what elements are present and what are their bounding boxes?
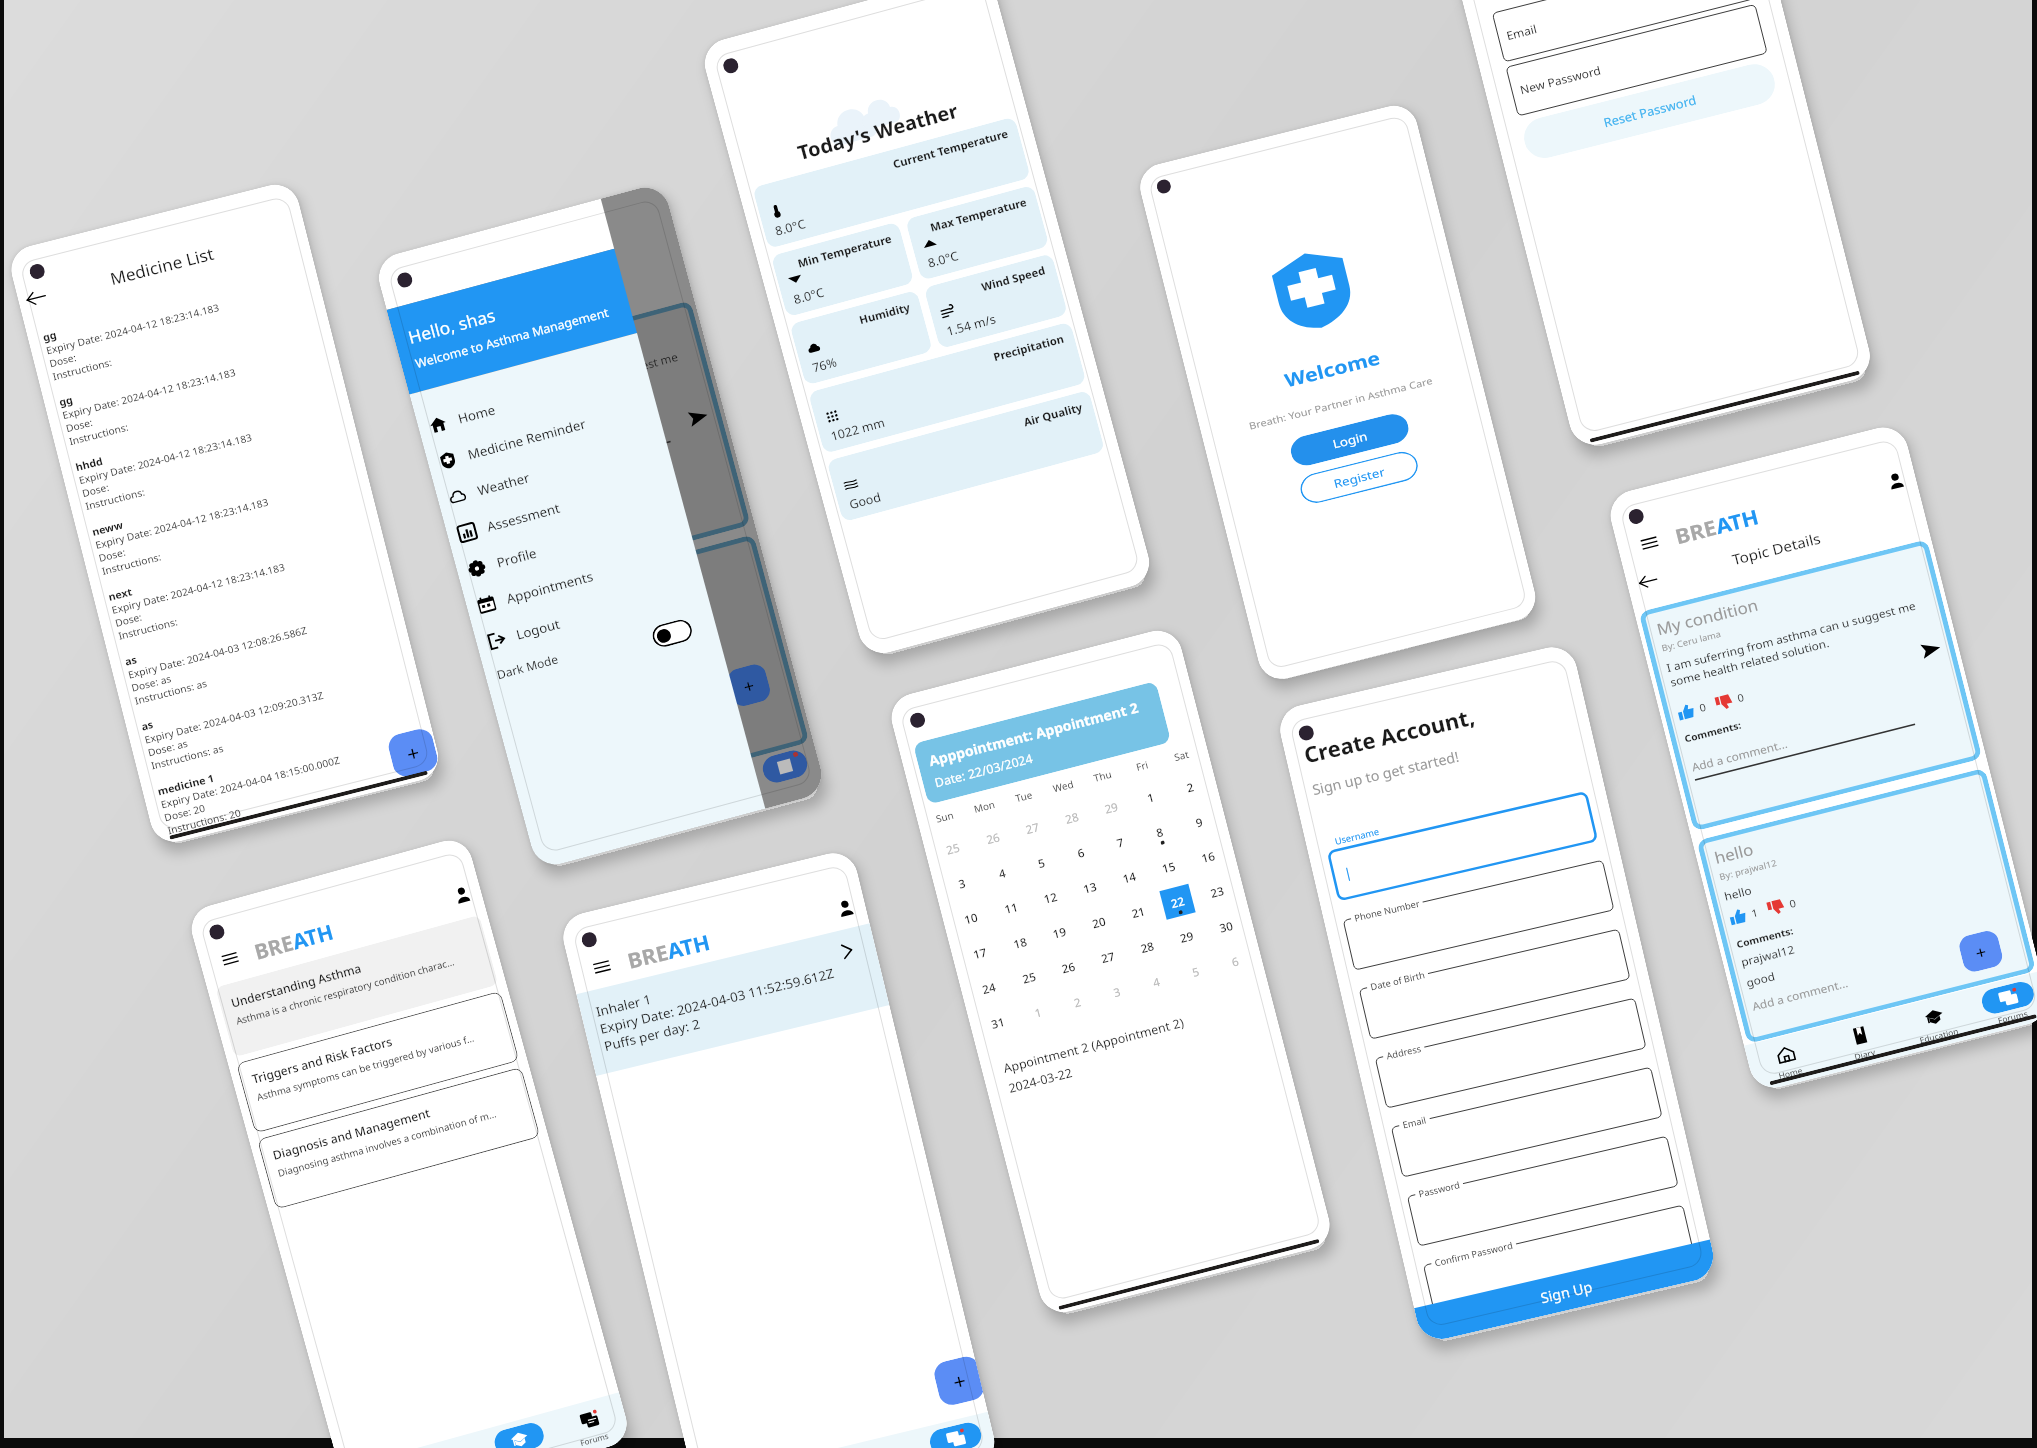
- button[interactable]: Humidity: [789, 290, 933, 386]
- button[interactable]: Education: [1892, 989, 1978, 1056]
- button[interactable]: Add medicine: [386, 726, 440, 779]
- button[interactable]: 3: [943, 865, 980, 901]
- button[interactable]: 6: [1217, 943, 1253, 979]
- button[interactable]: hello: [1696, 768, 2036, 1044]
- button[interactable]: Add topic: [1957, 928, 2005, 974]
- button[interactable]: 24: [971, 970, 1007, 1006]
- button[interactable]: [1375, 998, 1646, 1109]
- button[interactable]: 11: [993, 890, 1029, 926]
- button[interactable]: [1359, 929, 1630, 1040]
- button[interactable]: as: [140, 651, 426, 773]
- button[interactable]: neww: [90, 456, 376, 578]
- button[interactable]: Assessment: [443, 458, 680, 556]
- button[interactable]: 15: [1150, 849, 1187, 885]
- button[interactable]: 19: [1041, 914, 1077, 950]
- button[interactable]: 10: [952, 900, 989, 936]
- button[interactable]: Max Temperature: [905, 185, 1049, 281]
- button[interactable]: Education: [479, 1412, 562, 1448]
- button[interactable]: 1: [1132, 779, 1169, 815]
- button[interactable]: Profile: [453, 494, 690, 592]
- button[interactable]: Dark mode toggle: [650, 617, 694, 649]
- button[interactable]: Login: [1288, 411, 1412, 469]
- button[interactable]: 18: [1002, 924, 1038, 960]
- button[interactable]: 25: [1011, 959, 1047, 995]
- button[interactable]: Forums: [549, 1392, 632, 1448]
- button[interactable]: 23: [1199, 873, 1235, 909]
- button[interactable]: 6: [1062, 834, 1099, 870]
- button[interactable]: Current Temperature: [752, 116, 1031, 249]
- button[interactable]: My condition: [1638, 539, 1982, 832]
- button[interactable]: [1343, 860, 1614, 971]
- button[interactable]: Air Quality: [826, 390, 1105, 522]
- button[interactable]: Wind Speed: [924, 253, 1068, 349]
- button[interactable]: 28: [1129, 929, 1165, 965]
- button[interactable]: 26: [975, 820, 1011, 856]
- button[interactable]: 5: [1177, 953, 1214, 989]
- button[interactable]: 4: [984, 855, 1020, 891]
- button[interactable]: Logout: [472, 566, 710, 664]
- button[interactable]: 28: [1053, 800, 1090, 836]
- button[interactable]: Sign Up: [1414, 1239, 1718, 1344]
- button[interactable]: Back: [1637, 570, 1659, 592]
- button[interactable]: Triggers and Risk Factors: [236, 991, 519, 1133]
- button[interactable]: 27: [1090, 939, 1126, 975]
- button[interactable]: 30: [1208, 908, 1244, 944]
- button[interactable]: 2: [1172, 769, 1208, 805]
- button[interactable]: 9: [1181, 804, 1217, 840]
- button[interactable]: Diary: [409, 1431, 493, 1448]
- button[interactable]: gg: [58, 327, 343, 448]
- button[interactable]: Medicine Reminder: [424, 386, 661, 484]
- button[interactable]: medicine 1: [156, 716, 442, 837]
- button[interactable]: Understanding Asthma: [215, 915, 498, 1057]
- button[interactable]: Appointments: [462, 530, 700, 628]
- button[interactable]: Home: [1744, 1027, 1830, 1093]
- button[interactable]: 31: [980, 1005, 1016, 1041]
- button[interactable]: [1391, 1067, 1662, 1177]
- button[interactable]: 13: [1071, 869, 1108, 905]
- button[interactable]: Add: [932, 1354, 984, 1408]
- button[interactable]: gg: [41, 262, 327, 383]
- button[interactable]: 25: [934, 830, 971, 866]
- button[interactable]: 2: [1059, 984, 1095, 1020]
- button[interactable]: 7: [1102, 824, 1138, 860]
- button[interactable]: 14: [1111, 859, 1147, 895]
- button[interactable]: Profile: [836, 899, 855, 917]
- button[interactable]: 16: [1190, 839, 1226, 875]
- button[interactable]: hhdd: [74, 391, 360, 513]
- button[interactable]: 27: [1014, 810, 1050, 846]
- button[interactable]: as: [123, 586, 409, 708]
- button[interactable]: Forums: [1966, 971, 2037, 1037]
- button[interactable]: Precipitation: [808, 321, 1087, 454]
- button[interactable]: Min Temperature: [771, 221, 914, 317]
- button[interactable]: Register: [1297, 448, 1421, 506]
- button[interactable]: 22: [1159, 884, 1196, 920]
- button[interactable]: Forums: [914, 1412, 1000, 1448]
- button[interactable]: Menu: [592, 958, 611, 976]
- button[interactable]: Diagnosis and Management: [257, 1067, 540, 1209]
- button[interactable]: Profile: [1886, 471, 1906, 490]
- button[interactable]: 26: [1050, 949, 1086, 985]
- button[interactable]: Diary: [1818, 1008, 1904, 1074]
- button[interactable]: |: [1327, 791, 1598, 902]
- button[interactable]: Back: [24, 286, 48, 310]
- button[interactable]: 21: [1120, 894, 1156, 930]
- button[interactable]: Inhaler 1: [576, 923, 889, 1076]
- button[interactable]: Education: [841, 1429, 926, 1448]
- button[interactable]: 12: [1032, 879, 1068, 915]
- button[interactable]: Menu: [221, 949, 240, 968]
- button[interactable]: Weather: [433, 422, 671, 520]
- button[interactable]: 8: [1141, 814, 1178, 850]
- button[interactable]: 5: [1023, 845, 1059, 881]
- button[interactable]: Reset Password: [1520, 60, 1779, 162]
- button[interactable]: [1492, 0, 1754, 62]
- button[interactable]: next: [107, 521, 393, 643]
- button[interactable]: [1407, 1136, 1679, 1246]
- button[interactable]: Profile: [453, 885, 472, 904]
- button[interactable]: Diary: [768, 1447, 853, 1448]
- button[interactable]: 20: [1081, 904, 1117, 940]
- button[interactable]: Apppointment: Appointment 2: [913, 681, 1171, 805]
- button[interactable]: 4: [1138, 964, 1174, 1000]
- button[interactable]: [1423, 1205, 1695, 1315]
- button[interactable]: Menu: [1640, 534, 1659, 552]
- button[interactable]: 3: [1099, 974, 1135, 1010]
